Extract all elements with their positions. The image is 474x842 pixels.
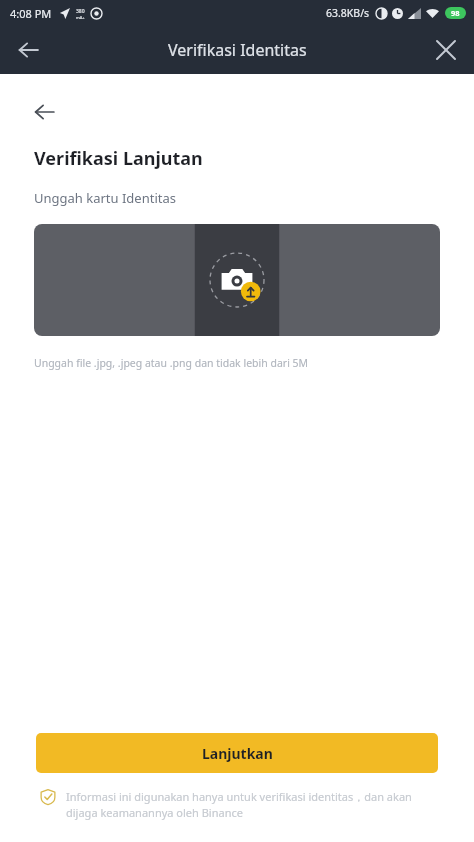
staticText: Informasi ini digunakan hanya untuk veri… [66, 789, 440, 820]
staticText: Lanjutkan [202, 744, 273, 763]
button[interactable]: Close [424, 28, 468, 72]
staticText: 380 [76, 8, 85, 15]
button[interactable]: Unggah kartu Identitas [34, 224, 440, 336]
staticText: 98 [451, 8, 460, 18]
staticText: 63.8KB/s [326, 6, 370, 20]
staticText: 4:08 PM [10, 6, 52, 21]
staticText: Verifikasi Lanjutan [34, 146, 203, 171]
staticText: Verifikasi Identitas [168, 39, 307, 61]
staticText: Unggah file .jpg, .jpeg atau .png dan ti… [34, 356, 309, 370]
staticText: mA+ [76, 15, 85, 20]
button[interactable]: Back [22, 90, 66, 134]
button[interactable]: Back [6, 28, 50, 72]
staticText: Unggah kartu Identitas [34, 189, 176, 207]
button[interactable]: Lanjutkan [36, 733, 438, 773]
